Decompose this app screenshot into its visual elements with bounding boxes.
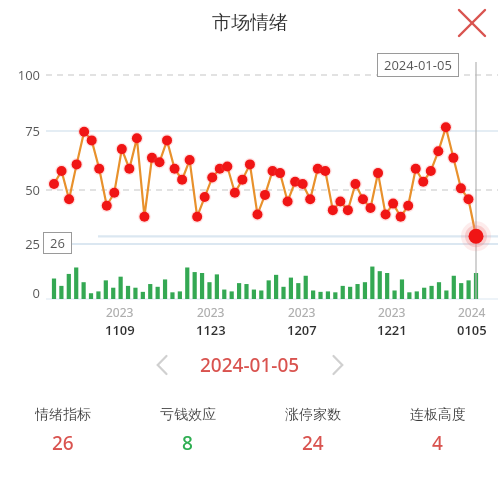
button[interactable]: Next day	[318, 344, 360, 386]
staticText: 2024-01-05	[384, 56, 452, 74]
staticText: 25	[2, 235, 40, 253]
staticText: 情绪指标	[35, 406, 91, 424]
staticText: 50	[2, 181, 40, 199]
staticText: 2023	[378, 304, 406, 320]
staticText: 市场情绪	[212, 11, 288, 35]
staticText: 2024-01-05	[200, 352, 300, 378]
button[interactable]: 情绪指标	[0, 404, 125, 458]
staticText: 1123	[196, 321, 226, 339]
button[interactable]: Close	[450, 1, 494, 45]
staticText: 连板高度	[410, 406, 466, 424]
staticText: 0105	[457, 321, 487, 339]
button[interactable]: 涨停家数	[250, 404, 375, 458]
staticText: 亏钱效应	[160, 406, 216, 424]
staticText: 1109	[105, 321, 135, 339]
staticText: 1207	[287, 321, 317, 339]
staticText: 2024	[458, 304, 486, 320]
staticText: 涨停家数	[285, 406, 341, 424]
staticText: 2023	[288, 304, 316, 320]
button[interactable]: 2024-01-05	[196, 348, 304, 382]
button[interactable]: Previous day	[140, 344, 182, 386]
staticText: 26	[52, 430, 74, 456]
staticText: 0	[2, 284, 40, 302]
staticText: 100	[2, 66, 40, 84]
button[interactable]: 连板高度	[375, 404, 500, 458]
staticText: 2023	[197, 304, 225, 320]
staticText: 26	[50, 234, 65, 252]
staticText: 4	[432, 430, 443, 456]
staticText: 2023	[106, 304, 134, 320]
staticText: 8	[182, 430, 193, 456]
staticText: 1221	[377, 321, 407, 339]
staticText: 24	[302, 430, 324, 456]
button[interactable]: 亏钱效应	[125, 404, 250, 458]
staticText: 75	[2, 122, 40, 140]
